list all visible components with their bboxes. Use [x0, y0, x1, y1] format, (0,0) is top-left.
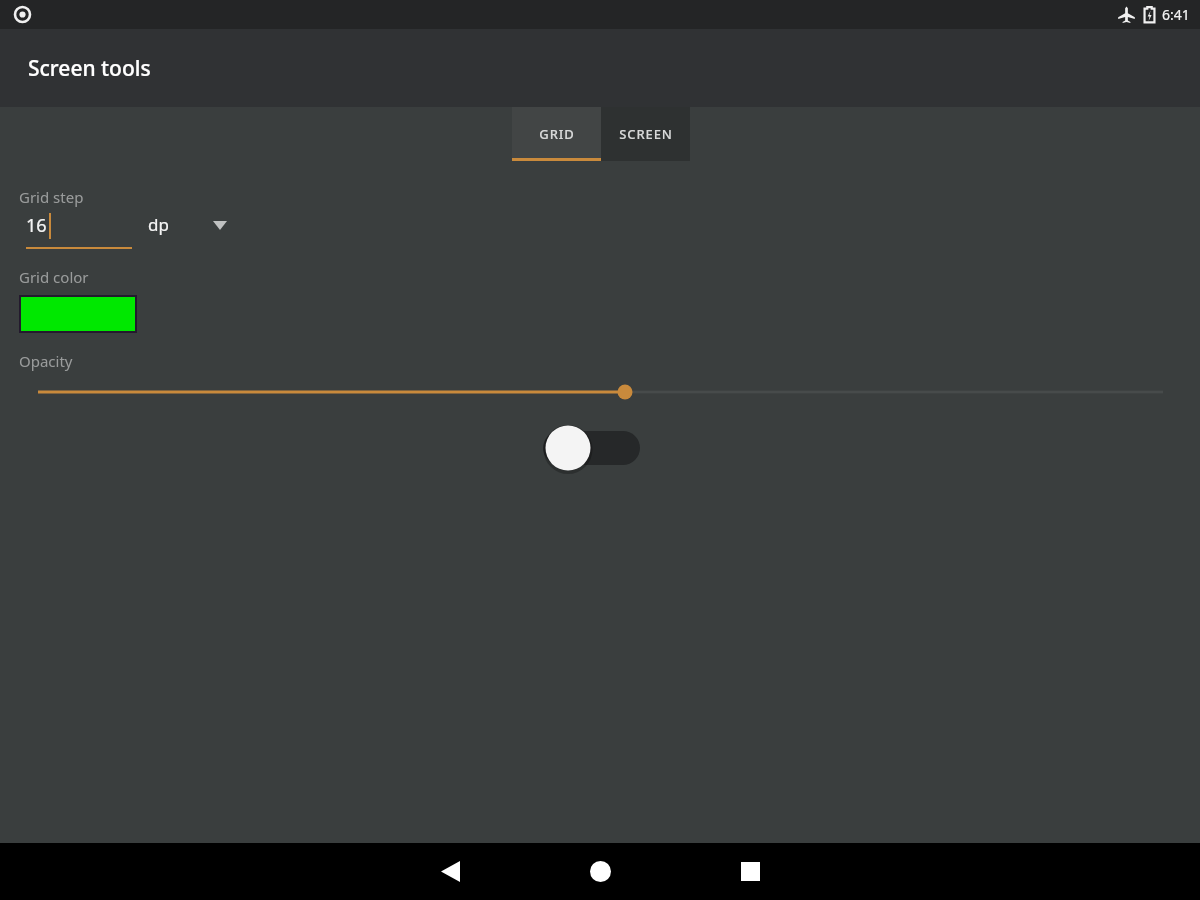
- other: Recording indicator: [14, 6, 31, 23]
- button[interactable]: Back: [420, 843, 480, 900]
- staticText: Screen tools: [28, 54, 151, 83]
- button[interactable]: Home: [570, 843, 630, 900]
- button[interactable]: 16: [26, 213, 132, 249]
- staticText: 16: [26, 213, 47, 238]
- button[interactable]: dp: [148, 213, 227, 249]
- staticText: GRID: [539, 125, 575, 143]
- staticText: Grid color: [19, 267, 89, 287]
- staticText: SCREEN: [619, 125, 673, 143]
- button[interactable]: GRID: [512, 107, 601, 161]
- button[interactable]: Opacity slider: [0, 379, 1200, 405]
- button[interactable]: Enable overlay: [543, 423, 640, 473]
- staticText: Grid step: [19, 187, 84, 207]
- button[interactable]: SCREEN: [601, 107, 690, 161]
- other: Units dropdown: [213, 221, 227, 230]
- staticText: Opacity: [19, 351, 73, 371]
- staticText: 6:41: [1162, 5, 1190, 24]
- staticText: dp: [148, 213, 169, 236]
- button[interactable]: Recent apps: [720, 843, 780, 900]
